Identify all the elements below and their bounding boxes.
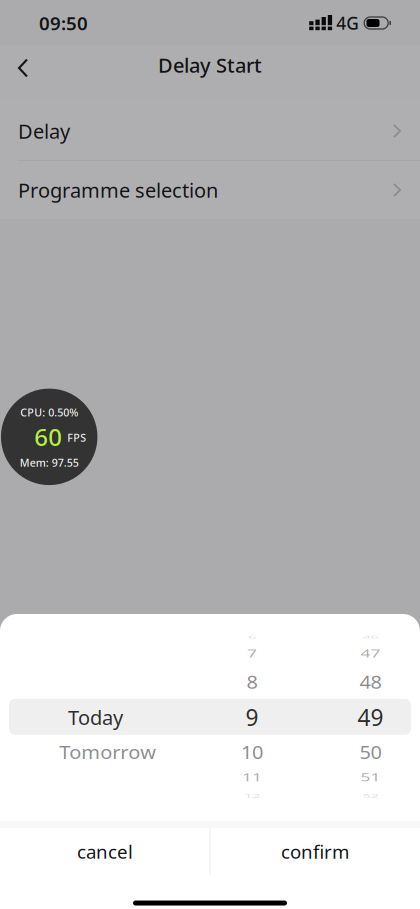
- staticText: 12: [244, 786, 260, 806]
- button[interactable]: confirm: [210, 828, 419, 875]
- staticText: 8: [246, 669, 257, 695]
- button[interactable]: Back: [0, 52, 46, 96]
- staticText: 46: [362, 627, 378, 647]
- staticText: Today: [68, 704, 123, 731]
- staticText: 7: [247, 642, 257, 665]
- button[interactable]: Programme selection: [0, 161, 420, 219]
- button[interactable]: Delay: [0, 102, 420, 160]
- staticText: 48: [359, 669, 381, 695]
- staticText: 6: [248, 627, 256, 647]
- staticText: 52: [362, 786, 378, 806]
- staticText: 09:50: [39, 11, 88, 35]
- staticText: 9: [245, 702, 258, 732]
- staticText: Delay Start: [158, 52, 262, 78]
- staticText: 10: [241, 739, 263, 765]
- staticText: 4G: [336, 11, 359, 34]
- staticText: confirm: [281, 839, 349, 864]
- staticText: cancel: [77, 839, 133, 864]
- staticText: Mem: 97.55: [20, 455, 79, 470]
- button[interactable]: cancel: [0, 828, 209, 875]
- staticText: Tomorrow: [59, 739, 156, 765]
- staticText: 49: [357, 702, 383, 732]
- staticText: 51: [360, 766, 380, 789]
- staticText: CPU: 0.50%: [20, 405, 78, 419]
- staticText: Programme selection: [18, 177, 218, 203]
- staticText: 50: [359, 739, 381, 765]
- staticText: FPS: [67, 431, 86, 445]
- staticText: 11: [242, 766, 262, 789]
- staticText: 47: [360, 642, 380, 665]
- staticText: 60: [34, 421, 62, 453]
- staticText: Delay: [18, 118, 70, 144]
